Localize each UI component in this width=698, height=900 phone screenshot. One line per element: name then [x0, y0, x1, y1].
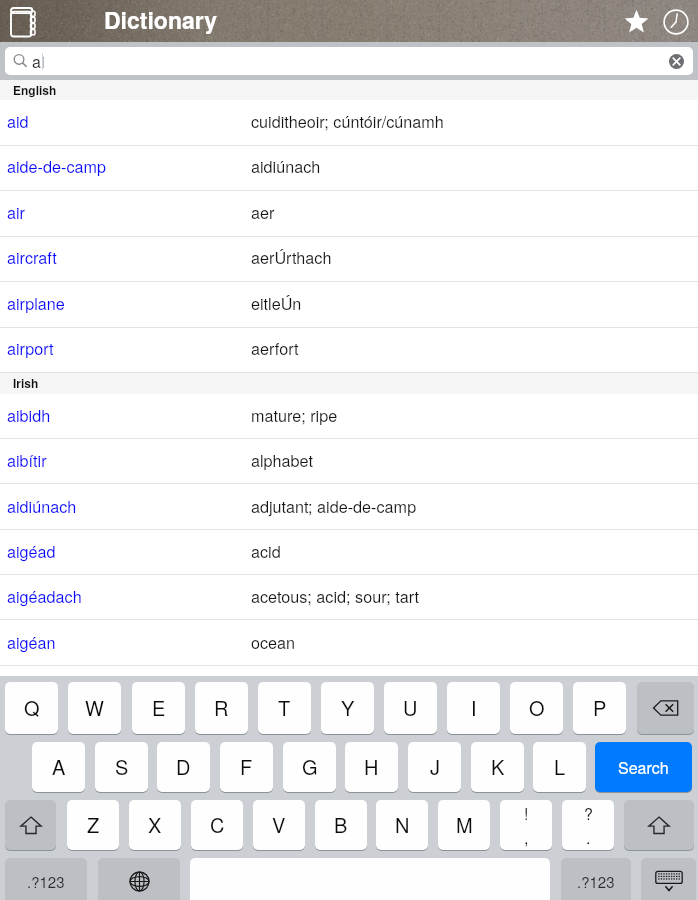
staticText: A [52, 752, 66, 781]
staticText: O [529, 693, 545, 722]
staticText: ! [524, 802, 529, 825]
staticText: Q [24, 693, 40, 722]
button[interactable]: J [408, 742, 461, 792]
button[interactable]: Shift [5, 800, 56, 850]
staticText: P [593, 693, 607, 722]
staticText: alphabet [251, 448, 313, 471]
staticText: aigéad [7, 539, 251, 562]
staticText: B [334, 810, 348, 839]
button[interactable]: Z [67, 800, 119, 850]
button[interactable]: aigéad [0, 530, 698, 575]
staticText: Z [87, 810, 100, 839]
staticText: aibítir [7, 448, 251, 471]
button[interactable]: L [533, 742, 586, 792]
staticText: acetous; acid; sour; tart [251, 584, 420, 607]
button[interactable]: airplane [0, 282, 698, 328]
button[interactable]: aibítir [0, 439, 698, 484]
staticText: . [586, 826, 591, 849]
button[interactable]: E [132, 682, 185, 734]
staticText: , [524, 826, 529, 849]
button[interactable]: K [471, 742, 524, 792]
button[interactable]: U [384, 682, 437, 734]
button[interactable]: Backspace [637, 682, 694, 734]
staticText: aigéadach [7, 584, 251, 607]
staticText: V [272, 810, 286, 839]
staticText: I [471, 693, 477, 722]
button[interactable]: Q [5, 682, 58, 734]
button[interactable]: History [660, 6, 692, 38]
staticText: aerÚrthach [251, 245, 332, 268]
button[interactable]: N [376, 800, 428, 850]
button[interactable]: Search [595, 742, 692, 792]
staticText: F [240, 752, 253, 781]
button[interactable]: Dictionaries [5, 4, 41, 40]
button[interactable]: R [195, 682, 248, 734]
button[interactable]: V [253, 800, 305, 850]
staticText: L [554, 752, 566, 781]
staticText: .?123 [27, 871, 65, 892]
button[interactable]: A [32, 742, 85, 792]
staticText: ai [32, 50, 45, 73]
button[interactable]: Clear search [666, 51, 686, 71]
staticText: ? [584, 802, 593, 825]
staticText: M [456, 810, 473, 839]
button[interactable]: aircraft [0, 236, 698, 282]
staticText: aigéan [7, 630, 251, 653]
staticText: Irish [13, 374, 39, 391]
button[interactable]: aigéadach [0, 575, 698, 620]
button[interactable]: M [438, 800, 490, 850]
button[interactable]: .?123 [561, 858, 631, 900]
button[interactable]: Change keyboard language [98, 858, 180, 900]
staticText: aibidh [7, 403, 251, 426]
button[interactable]: I [447, 682, 500, 734]
staticText: adjutant; aide-de-camp [251, 494, 417, 517]
staticText: eitleÚn [251, 291, 302, 314]
button[interactable]: W [68, 682, 121, 734]
staticText: air [7, 200, 251, 223]
button[interactable]: Y [321, 682, 374, 734]
staticText: mature; ripe [251, 403, 338, 426]
button[interactable]: airport [0, 327, 698, 373]
staticText: airport [7, 336, 251, 359]
button[interactable]: .?123 [5, 858, 87, 900]
staticText: .?123 [577, 871, 615, 892]
staticText: aidiúnach [251, 154, 321, 177]
staticText: R [214, 693, 229, 722]
button[interactable]: aidiúnach [0, 485, 698, 530]
button[interactable]: X [129, 800, 181, 850]
staticText: aer [251, 200, 275, 223]
button[interactable]: aigéan [0, 621, 698, 666]
button[interactable]: P [573, 682, 626, 734]
button[interactable]: ? [562, 800, 614, 850]
button[interactable]: S [95, 742, 148, 792]
staticText: acid [251, 539, 281, 562]
staticText: C [210, 810, 225, 839]
button[interactable]: aid [0, 100, 698, 146]
button[interactable]: C [191, 800, 243, 850]
button[interactable]: ! [500, 800, 552, 850]
staticText: H [364, 752, 379, 781]
button[interactable]: Hide keyboard [641, 858, 696, 900]
button[interactable]: ai [5, 47, 693, 75]
staticText: J [430, 752, 440, 781]
button[interactable]: H [345, 742, 398, 792]
staticText: N [395, 810, 410, 839]
button[interactable]: Favourites [620, 5, 652, 37]
button[interactable]: air [0, 191, 698, 237]
button[interactable]: Shift [624, 800, 694, 850]
staticText: D [176, 752, 191, 781]
button[interactable]: B [315, 800, 367, 850]
button[interactable]: O [510, 682, 563, 734]
staticText: airplane [7, 291, 251, 314]
button[interactable]: aibidh [0, 394, 698, 439]
button[interactable]: T [258, 682, 311, 734]
staticText: aide-de-camp [7, 154, 251, 177]
button[interactable]: D [157, 742, 210, 792]
button[interactable]: G [283, 742, 336, 792]
button[interactable]: F [220, 742, 273, 792]
staticText: English [13, 81, 57, 98]
staticText: cuiditheoir; cúntóir/cúnamh [251, 109, 444, 132]
button[interactable]: aide-de-camp [0, 145, 698, 191]
staticText: ocean [251, 630, 296, 653]
